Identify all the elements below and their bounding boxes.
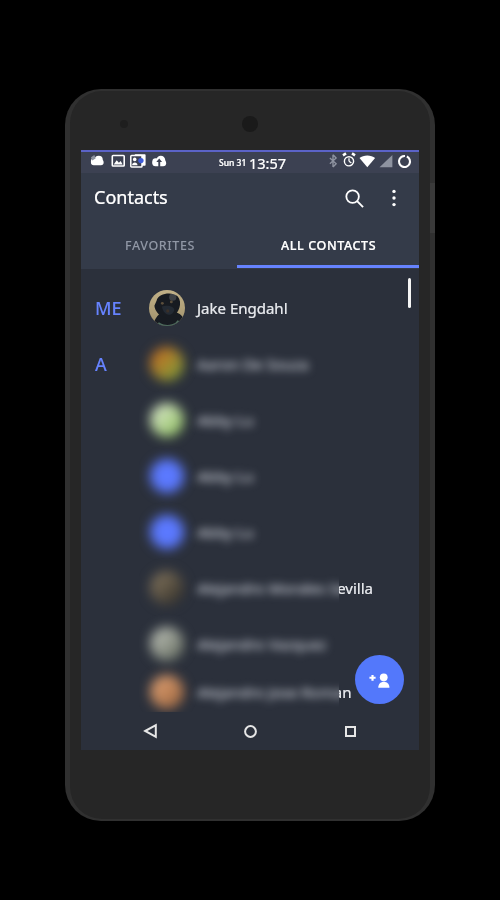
staticText: Contacts [94,185,168,210]
button[interactable]: Recent apps [332,713,368,749]
staticText: Alejandro Jose Roman [197,682,352,702]
staticText: Jake Engdahl [197,298,288,318]
button[interactable]: Add contact [355,655,404,704]
staticText: Abby Lu [197,466,254,486]
staticText: ME [95,296,122,321]
button[interactable]: Abby Lu [81,504,419,560]
button[interactable]: Alejandro Vazquez [81,616,419,672]
staticText: Abby Lu [197,466,254,486]
staticText: Abby Lu [197,410,254,430]
button[interactable]: A [81,336,419,392]
button[interactable]: Alejandro Morales Sevilla [81,560,419,616]
button[interactable]: Alejandro Vazquez [81,616,419,672]
button[interactable]: Abby Lu [81,504,419,560]
button[interactable]: Abby Lu [81,392,419,448]
button[interactable]: Search [334,178,374,218]
button[interactable]: Alejandro Jose Roman [81,672,419,712]
staticText: Alejandro Morales Sevilla [197,578,374,598]
staticText: Sun 31 [219,157,247,169]
staticText: FAVORITES [125,237,195,254]
staticText: A [95,352,107,377]
button[interactable]: Abby Lu [81,448,419,504]
button[interactable]: FAVORITES [81,222,250,269]
staticText: Abby Lu [197,522,254,542]
staticText: Aaron De Souza [197,354,309,374]
staticText: ALL CONTACTS [281,237,377,254]
button[interactable]: Abby Lu [81,448,419,504]
button[interactable]: Alejandro Jose Roman [81,672,419,712]
staticText: Abby Lu [197,522,254,542]
button[interactable]: Back [132,713,168,749]
button[interactable]: More options [374,178,414,218]
staticText: Alejandro Jose Roman [197,682,352,702]
staticText: Alejandro Morales Sevilla [197,578,374,598]
staticText: Alejandro Vazquez [197,634,327,654]
button[interactable]: Home [232,713,268,749]
staticText: 13:57 [249,153,287,173]
staticText: Alejandro Vazquez [197,634,327,654]
staticText: Aaron De Souza [197,354,309,374]
button[interactable]: Aaron De Souza [81,336,419,392]
button[interactable]: Abby Lu [81,392,419,448]
button[interactable]: ME [81,280,419,336]
button[interactable]: Alejandro Morales Sevilla [81,560,419,616]
button[interactable]: ALL CONTACTS [250,222,419,269]
staticText: Abby Lu [197,410,254,430]
